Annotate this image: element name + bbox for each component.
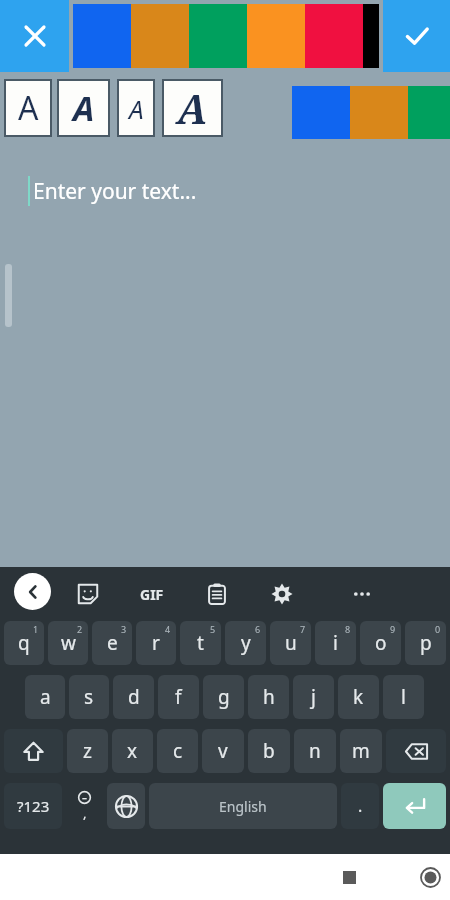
button[interactable]: e [92, 621, 132, 665]
button[interactable]: w [48, 621, 88, 665]
staticText: d [128, 684, 140, 710]
staticText: z [83, 738, 92, 764]
button[interactable]: h [248, 675, 289, 719]
button[interactable]: c [157, 729, 198, 773]
button[interactable]: Close [0, 0, 69, 72]
staticText: p [420, 630, 432, 656]
staticText: u [285, 630, 297, 656]
staticText: 8 [345, 623, 351, 635]
staticText: , [83, 804, 87, 822]
button[interactable]: k [338, 675, 379, 719]
button[interactable]: Back [14, 573, 51, 610]
button[interactable]: g [203, 675, 244, 719]
button[interactable]: Shift [4, 729, 63, 773]
button[interactable]: Language [107, 783, 145, 829]
button[interactable]: u [270, 621, 311, 665]
staticText: j [311, 684, 316, 710]
staticText: y [241, 630, 251, 656]
button[interactable]: Settings [265, 577, 299, 611]
staticText: h [263, 684, 275, 710]
button[interactable]: Clipboard [200, 577, 234, 611]
staticText: ?123 [17, 796, 50, 816]
button[interactable]: l [383, 675, 424, 719]
staticText: 9 [390, 623, 396, 635]
button[interactable]: . [341, 783, 379, 829]
button[interactable]: p [405, 621, 446, 665]
button[interactable]: i [315, 621, 356, 665]
button[interactable]: Font style [119, 81, 153, 135]
button[interactable]: m [340, 729, 382, 773]
button[interactable]: More [345, 577, 379, 611]
staticText: 2 [77, 623, 83, 635]
button[interactable]: z [67, 729, 108, 773]
staticText: 0 [435, 623, 441, 635]
button[interactable]: a [25, 675, 65, 719]
button[interactable]: o [360, 621, 401, 665]
button[interactable]: y [225, 621, 266, 665]
button[interactable]: r [136, 621, 176, 665]
button[interactable]: Font style [59, 81, 108, 135]
button[interactable]: q [4, 621, 44, 665]
staticText: 1 [33, 623, 39, 635]
staticText: l [401, 684, 406, 710]
staticText: . [358, 795, 363, 817]
staticText: 7 [300, 623, 306, 635]
staticText: 6 [255, 623, 261, 635]
staticText: b [263, 738, 275, 764]
staticText: A [129, 91, 144, 126]
button[interactable]: Home [205, 854, 450, 900]
staticText: 5 [210, 623, 216, 635]
staticText: A [73, 85, 95, 131]
staticText: x [127, 738, 138, 764]
button[interactable]: GIF [135, 577, 169, 611]
staticText: o [375, 630, 387, 656]
staticText: n [309, 738, 321, 764]
button[interactable]: b [248, 729, 290, 773]
button[interactable]: Back [298, 854, 450, 900]
button[interactable]: Recents [124, 854, 450, 900]
staticText: g [218, 684, 230, 710]
button[interactable]: Font style [164, 81, 221, 135]
button[interactable]: s [69, 675, 109, 719]
button[interactable]: English [149, 783, 337, 829]
staticText: q [18, 630, 30, 656]
button[interactable]: Backspace [386, 729, 446, 773]
button[interactable]: ?123 [4, 783, 62, 829]
button[interactable]: Stickers [71, 577, 105, 611]
staticText: k [353, 684, 364, 710]
button[interactable]: v [202, 729, 244, 773]
staticText: A [177, 81, 208, 135]
button[interactable]: Emoji comma [66, 783, 103, 829]
staticText: f [175, 684, 182, 710]
staticText: GIF [140, 585, 164, 604]
staticText: 3 [121, 623, 127, 635]
staticText: v [218, 738, 228, 764]
staticText: t [197, 630, 204, 656]
staticText: w [61, 630, 76, 656]
staticText: s [84, 684, 94, 710]
button[interactable]: f [158, 675, 199, 719]
staticText: i [333, 630, 338, 656]
button[interactable]: x [112, 729, 153, 773]
staticText: 4 [165, 623, 171, 635]
button[interactable]: d [113, 675, 154, 719]
button[interactable]: j [293, 675, 334, 719]
staticText: A [18, 86, 39, 130]
staticText: m [352, 738, 370, 764]
button[interactable]: n [294, 729, 336, 773]
button[interactable]: Enter [383, 783, 446, 829]
button[interactable]: Font style [6, 81, 50, 135]
staticText: r [152, 630, 160, 656]
button[interactable]: t [180, 621, 221, 665]
button[interactable]: Done [383, 0, 450, 72]
staticText: English [219, 797, 267, 816]
